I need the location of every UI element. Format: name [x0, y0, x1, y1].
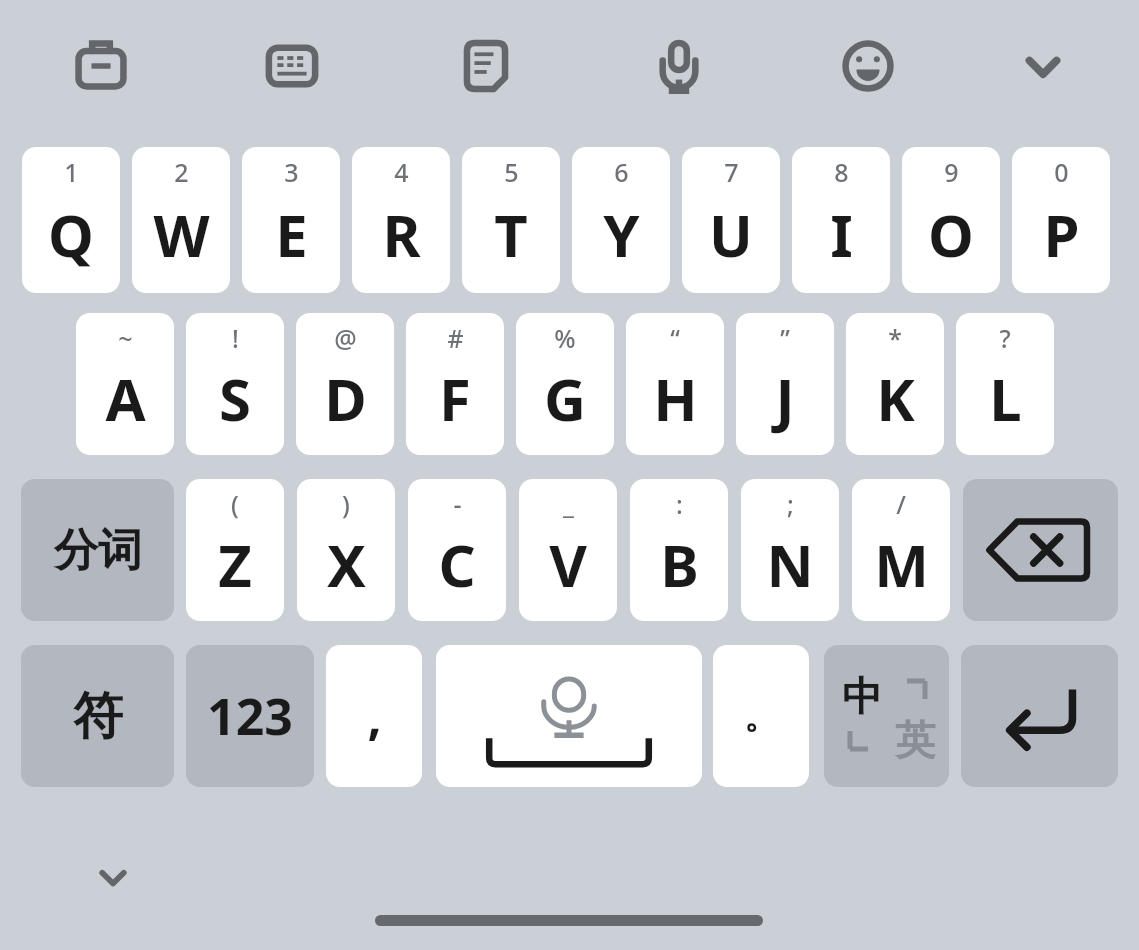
staticText: _	[563, 487, 574, 521]
button[interactable]: 1	[22, 147, 120, 293]
staticText: H	[653, 359, 698, 438]
staticText: 符	[73, 685, 123, 748]
staticText: G	[544, 359, 586, 438]
button[interactable]: 。	[713, 645, 809, 787]
staticText: -	[453, 487, 462, 521]
staticText: L	[989, 359, 1022, 438]
button[interactable]: 2	[132, 147, 230, 293]
staticText: 分词	[54, 523, 142, 578]
button[interactable]: !	[186, 313, 284, 455]
staticText: M	[874, 525, 929, 604]
staticText: W	[153, 195, 210, 274]
button[interactable]: Enter	[961, 645, 1118, 787]
staticText: /	[896, 487, 906, 521]
staticText: 中	[842, 671, 882, 721]
staticText: N	[766, 525, 814, 604]
staticText: Z	[218, 525, 252, 604]
staticText: 5	[504, 155, 519, 189]
button[interactable]: Backspace	[963, 479, 1118, 621]
button[interactable]: Space	[436, 645, 702, 787]
staticText: S	[219, 359, 251, 438]
button[interactable]: 分词	[21, 479, 174, 621]
staticText: T	[494, 195, 528, 274]
staticText: R	[382, 195, 421, 274]
button[interactable]: ”	[736, 313, 834, 455]
staticText: P	[1043, 195, 1080, 274]
button[interactable]: ;	[741, 479, 839, 621]
staticText: F	[439, 359, 471, 438]
button[interactable]: Chinese English toggle	[824, 645, 949, 787]
button[interactable]: Keyboard	[258, 32, 326, 100]
button[interactable]: #	[406, 313, 504, 455]
staticText: 0	[1054, 155, 1069, 189]
button[interactable]: Toolbox	[67, 32, 135, 100]
staticText: 3	[284, 155, 299, 189]
staticText: !	[232, 321, 239, 355]
staticText: X	[327, 525, 366, 604]
button[interactable]: 8	[792, 147, 890, 293]
button[interactable]: 9	[902, 147, 1000, 293]
button[interactable]: _	[519, 479, 617, 621]
staticText: 2	[174, 155, 189, 189]
staticText: Q	[48, 195, 94, 274]
staticText: E	[275, 195, 308, 274]
button[interactable]: -	[408, 479, 506, 621]
staticText: (	[231, 487, 239, 521]
staticText: 123	[207, 682, 293, 750]
button[interactable]: 123	[186, 645, 314, 787]
button[interactable]: Clipboard	[452, 32, 520, 100]
button[interactable]: Hide keyboard	[86, 850, 140, 904]
staticText: 9	[944, 155, 959, 189]
staticText: J	[775, 359, 795, 438]
staticText: “	[670, 321, 680, 355]
button[interactable]: @	[296, 313, 394, 455]
button[interactable]: )	[297, 479, 395, 621]
staticText: Y	[603, 195, 640, 274]
staticText: C	[438, 525, 476, 604]
staticText: 1	[64, 155, 79, 189]
button[interactable]: 符	[21, 645, 174, 787]
button[interactable]: 6	[572, 147, 670, 293]
button[interactable]: Voice input	[645, 32, 713, 100]
staticText: B	[660, 525, 699, 604]
staticText: ~	[118, 321, 133, 355]
button[interactable]: 7	[682, 147, 780, 293]
button[interactable]: 0	[1012, 147, 1110, 293]
staticText: K	[876, 359, 915, 438]
staticText: U	[709, 195, 753, 274]
button[interactable]: ,	[326, 645, 422, 787]
button[interactable]: %	[516, 313, 614, 455]
button[interactable]: *	[846, 313, 944, 455]
staticText: )	[342, 487, 350, 521]
staticText: V	[549, 525, 587, 604]
button[interactable]: Collapse	[1009, 32, 1077, 100]
staticText: O	[928, 195, 974, 274]
button[interactable]: Emoji	[834, 32, 902, 100]
button[interactable]: (	[186, 479, 284, 621]
staticText: ”	[780, 321, 790, 355]
staticText: ;	[787, 487, 794, 521]
staticText: 。	[744, 695, 778, 738]
staticText: I	[830, 195, 853, 274]
staticText: :	[676, 487, 683, 521]
button[interactable]: :	[630, 479, 728, 621]
button[interactable]: ~	[76, 313, 174, 455]
staticText: @	[334, 321, 357, 355]
staticText: 4	[394, 155, 409, 189]
button[interactable]: 5	[462, 147, 560, 293]
button[interactable]: ?	[956, 313, 1054, 455]
staticText: 7	[724, 155, 739, 189]
button[interactable]: 3	[242, 147, 340, 293]
staticText: 6	[614, 155, 629, 189]
staticText: %	[554, 321, 576, 355]
staticText: 8	[834, 155, 849, 189]
staticText: *	[888, 321, 902, 355]
staticText: A	[105, 359, 146, 438]
staticText: 英	[895, 715, 935, 765]
button[interactable]: “	[626, 313, 724, 455]
staticText: #	[447, 321, 464, 355]
staticText: ,	[367, 682, 382, 750]
staticText: ?	[999, 321, 1011, 355]
button[interactable]: /	[852, 479, 950, 621]
button[interactable]: 4	[352, 147, 450, 293]
